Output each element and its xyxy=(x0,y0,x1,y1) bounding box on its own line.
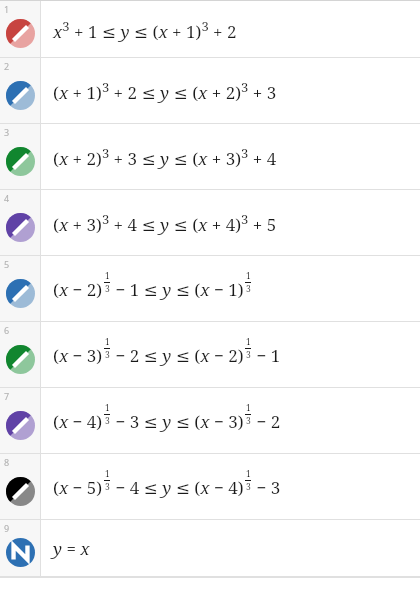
staticText: (x + 3)3 + 4 ≤ y ≤ (x + 4)3 + 5 xyxy=(53,210,277,236)
staticText: 3 xyxy=(246,415,251,427)
staticText: 3 xyxy=(4,126,10,138)
staticText: (x − 5) xyxy=(53,476,103,499)
button[interactable]: 8 xyxy=(0,454,420,520)
button[interactable]: 9 xyxy=(0,520,420,577)
staticText: − 2 ≤ y ≤ (x − 2) xyxy=(111,344,244,367)
staticText: 1 xyxy=(105,402,110,414)
button[interactable]: Expression style xyxy=(6,477,35,506)
staticText: 1 xyxy=(246,270,251,282)
staticText: (x + 1)3 + 2 ≤ y ≤ (x + 2)3 + 3 xyxy=(53,78,277,104)
staticText: 3 xyxy=(105,415,110,427)
staticText: − 3 xyxy=(252,476,281,499)
button[interactable]: 7 xyxy=(0,388,420,454)
staticText: 8 xyxy=(4,456,10,468)
button[interactable]: Expression style xyxy=(6,81,35,110)
staticText: 3 xyxy=(246,481,251,493)
staticText: 3 xyxy=(246,283,251,295)
staticText: y = x xyxy=(53,537,90,560)
staticText: 4 xyxy=(4,192,10,204)
button[interactable]: Curve style xyxy=(6,538,35,567)
staticText: 1 xyxy=(246,468,251,480)
staticText: (x − 2) xyxy=(53,278,103,301)
button[interactable]: 5 xyxy=(0,256,420,322)
staticText: 1 xyxy=(105,270,110,282)
button[interactable]: Expression style xyxy=(6,147,35,176)
staticText: − 1 xyxy=(252,344,281,367)
button[interactable]: 6 xyxy=(0,322,420,388)
button[interactable]: 1 xyxy=(0,1,420,58)
staticText: x3 + 1 ≤ y ≤ (x + 1)3 + 2 xyxy=(53,17,237,43)
staticText: 7 xyxy=(4,390,10,402)
staticText: 1 xyxy=(246,336,251,348)
button[interactable]: Expression style xyxy=(6,279,35,308)
staticText: 3 xyxy=(105,349,110,361)
button[interactable]: 2 xyxy=(0,58,420,124)
staticText: (x + 2)3 + 3 ≤ y ≤ (x + 3)3 + 4 xyxy=(53,144,277,170)
button[interactable]: Expression style xyxy=(6,345,35,374)
staticText: 5 xyxy=(4,258,10,270)
staticText: (x − 3) xyxy=(53,344,103,367)
button[interactable]: Expression style xyxy=(6,19,35,48)
staticText: 3 xyxy=(246,349,251,361)
staticText: 6 xyxy=(4,324,10,336)
staticText: 9 xyxy=(4,522,10,534)
button[interactable]: Expression style xyxy=(6,213,35,242)
staticText: (x − 4) xyxy=(53,410,103,433)
staticText: 3 xyxy=(105,283,110,295)
staticText: 1 xyxy=(4,3,10,15)
staticText: 2 xyxy=(4,60,10,72)
staticText: 1 xyxy=(105,336,110,348)
staticText: 1 xyxy=(246,402,251,414)
button[interactable]: 3 xyxy=(0,124,420,190)
staticText: − 2 xyxy=(252,410,281,433)
button[interactable]: 4 xyxy=(0,190,420,256)
button[interactable]: Expression style xyxy=(6,411,35,440)
staticText: 1 xyxy=(105,468,110,480)
staticText: − 4 ≤ y ≤ (x − 4) xyxy=(111,476,244,499)
staticText: − 3 ≤ y ≤ (x − 3) xyxy=(111,410,244,433)
staticText: − 1 ≤ y ≤ (x − 1) xyxy=(111,278,244,301)
staticText: 3 xyxy=(105,481,110,493)
